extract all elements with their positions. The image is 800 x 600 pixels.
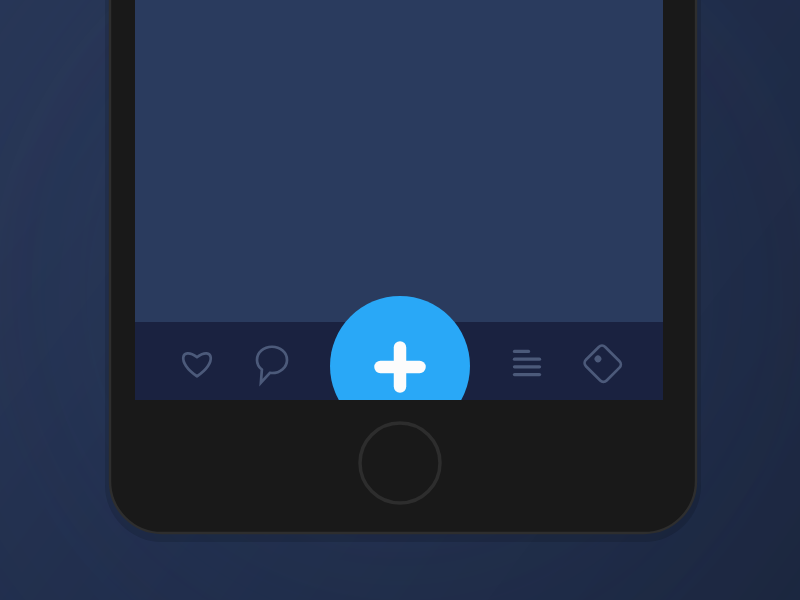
button[interactable]: Home xyxy=(360,423,440,503)
button[interactable]: Create new post xyxy=(330,296,470,436)
button[interactable]: Feed xyxy=(485,322,570,400)
button[interactable]: Comments xyxy=(240,322,325,400)
button[interactable]: Tags xyxy=(570,322,655,400)
button[interactable]: Likes xyxy=(155,322,240,400)
